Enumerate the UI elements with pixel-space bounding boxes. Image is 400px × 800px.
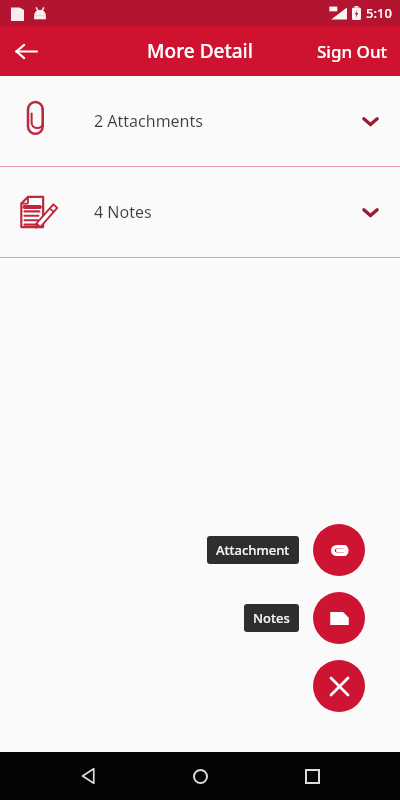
button[interactable]: Attachment — [207, 536, 299, 564]
staticText: More Detail — [147, 38, 253, 64]
button[interactable]: Attachment — [313, 524, 365, 576]
staticText: Notes — [253, 609, 290, 627]
staticText: 2 Attachments — [94, 110, 203, 132]
button[interactable]: Close menu — [313, 660, 365, 712]
staticText: Sign Out — [317, 40, 388, 63]
staticText: Attachment — [216, 541, 290, 559]
button[interactable]: 4 Notes — [0, 167, 400, 257]
button[interactable]: Sign Out — [305, 29, 400, 74]
button[interactable]: Notes — [244, 604, 299, 632]
staticText: 4 Notes — [94, 201, 152, 223]
button[interactable]: Back — [64, 752, 112, 800]
button[interactable]: Notes — [313, 592, 365, 644]
button[interactable]: 2 Attachments — [0, 76, 400, 166]
button[interactable]: Home — [176, 752, 224, 800]
staticText: 5:10 — [366, 4, 392, 22]
button[interactable]: Recent apps — [288, 752, 336, 800]
button[interactable]: Navigate up — [2, 27, 50, 75]
